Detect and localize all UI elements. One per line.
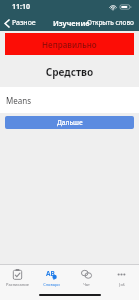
staticText: Открыть слово — [87, 18, 134, 27]
staticText: Još — [119, 282, 125, 287]
staticText: 11:10 — [12, 2, 30, 12]
button[interactable]: Разное — [0, 16, 42, 30]
staticText: Means — [6, 95, 32, 106]
staticText: Средство — [0, 65, 139, 79]
button[interactable]: Открыть слово — [82, 15, 139, 30]
button[interactable]: Расписание — [0, 265, 34, 290]
button[interactable]: Još — [104, 265, 139, 290]
staticText: Изучение — [53, 18, 90, 28]
button[interactable]: Means — [0, 87, 139, 113]
button[interactable]: Неправильно — [5, 33, 134, 55]
staticText: Разное — [12, 18, 36, 28]
button[interactable]: Словари — [34, 265, 69, 290]
staticText: AB — [46, 269, 55, 278]
button[interactable]: Дальше — [5, 116, 134, 129]
staticText: Расписание — [6, 282, 29, 287]
staticText: Чат — [83, 282, 90, 287]
staticText: Дальше — [57, 118, 83, 127]
button[interactable]: Чат — [69, 265, 104, 290]
staticText: Неправильно — [42, 39, 97, 50]
staticText: Словари — [43, 282, 60, 287]
